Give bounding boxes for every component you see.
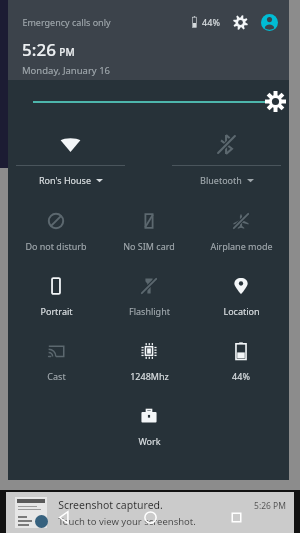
staticText: Flashlight (129, 305, 170, 317)
button[interactable]: Location (197, 271, 285, 336)
staticText: Bluetooth (200, 174, 242, 186)
staticText: 5:26 (22, 38, 56, 61)
staticText: Screenshot captured. (58, 498, 163, 512)
button[interactable]: Cast (12, 336, 100, 401)
staticText: Cast (47, 370, 66, 382)
staticText: PM (59, 45, 75, 59)
staticText: Touch to view your screenshot. (58, 515, 196, 528)
staticText: Portrait (40, 305, 73, 317)
button[interactable]: Work (105, 401, 193, 466)
button[interactable]: 1248Mhz (105, 336, 193, 401)
button[interactable]: Back (56, 509, 73, 526)
staticText: 1248Mhz (130, 370, 169, 382)
staticText: Work (138, 435, 161, 447)
staticText: Emergency calls only (22, 16, 111, 28)
button[interactable]: Screenshot captured. (6, 492, 294, 533)
button[interactable]: Flashlight (105, 271, 193, 336)
button[interactable]: Settings (230, 12, 250, 32)
staticText: 5:26 PM (254, 500, 286, 512)
button[interactable]: Recent apps (228, 509, 245, 526)
button[interactable]: Bluetooth (164, 130, 289, 186)
staticText: Airplane mode (210, 240, 273, 252)
staticText: Location (223, 305, 260, 317)
button[interactable]: Brightness (8, 80, 289, 124)
staticText: Monday, January 16 (22, 64, 110, 77)
button[interactable]: Portrait (12, 271, 100, 336)
staticText: 44% (202, 16, 220, 28)
staticText: Do not disturb (25, 240, 87, 252)
button[interactable]: User profile (259, 12, 279, 32)
button[interactable]: 44% (197, 336, 285, 401)
button[interactable]: Wi-Fi Ron's House (8, 130, 133, 186)
staticText: No SIM card (123, 240, 175, 252)
button[interactable]: Do not disturb (12, 206, 100, 271)
staticText: 44% (232, 370, 250, 382)
button[interactable]: Home (142, 509, 159, 526)
button[interactable]: Airplane mode (197, 206, 285, 271)
button[interactable]: No SIM card (105, 206, 193, 271)
staticText: Ron's House (39, 174, 91, 186)
